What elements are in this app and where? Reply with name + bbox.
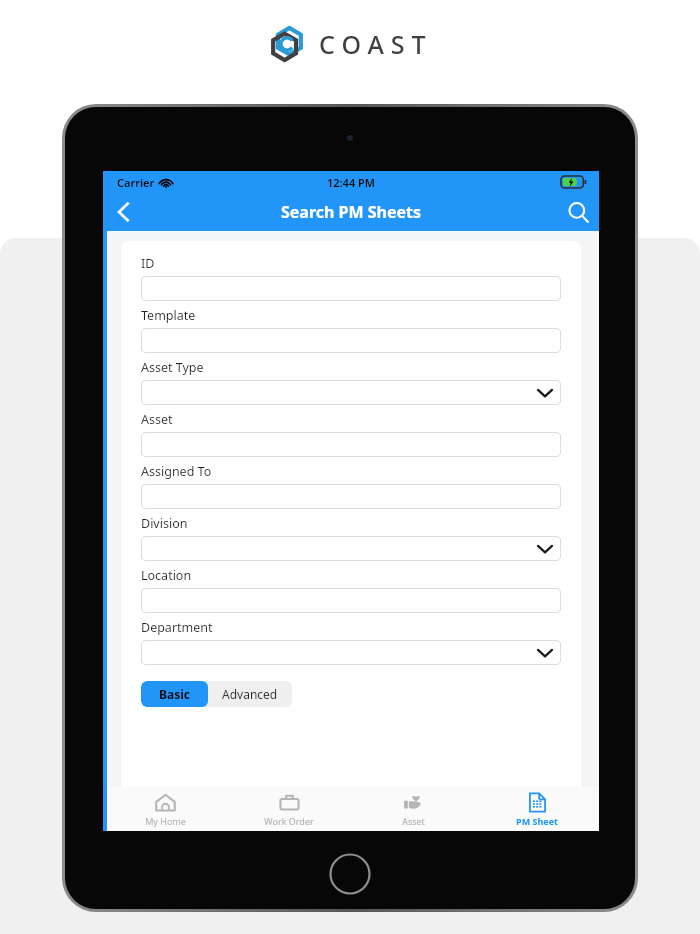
button[interactable]: Search	[557, 193, 599, 231]
button[interactable]	[141, 484, 561, 509]
staticText: Asset	[402, 815, 425, 827]
staticText: Work Order	[264, 815, 314, 827]
staticText: Carrier	[117, 175, 155, 190]
staticText: Asset	[141, 411, 173, 428]
button[interactable]: Asset	[351, 787, 475, 831]
staticText: COAST	[319, 27, 433, 61]
button[interactable]	[141, 276, 561, 301]
button[interactable]	[141, 640, 561, 665]
button[interactable]: Basic	[141, 681, 208, 707]
staticText: Template	[141, 307, 196, 324]
staticText: Assigned To	[141, 463, 212, 480]
staticText: 12:44 PM	[327, 175, 376, 190]
button[interactable]	[141, 588, 561, 613]
button[interactable]: PM Sheet	[475, 787, 599, 831]
staticText: ID	[141, 255, 155, 272]
staticText: Advanced	[222, 686, 278, 702]
staticText: Asset Type	[141, 359, 204, 376]
button[interactable]: Work Order	[227, 787, 351, 831]
button[interactable]	[141, 432, 561, 457]
button[interactable]: Advanced	[208, 681, 292, 707]
staticText: Department	[141, 619, 213, 636]
staticText: PM Sheet	[516, 815, 558, 827]
button[interactable]: My Home	[103, 787, 227, 831]
staticText: Basic	[159, 686, 190, 702]
button[interactable]	[141, 380, 561, 405]
button[interactable]	[141, 536, 561, 561]
staticText: Division	[141, 515, 188, 532]
staticText: Location	[141, 567, 192, 584]
button[interactable]	[141, 328, 561, 353]
button[interactable]: Back	[103, 193, 143, 231]
staticText: Search PM Sheets	[281, 201, 422, 223]
staticText: My Home	[145, 815, 186, 827]
